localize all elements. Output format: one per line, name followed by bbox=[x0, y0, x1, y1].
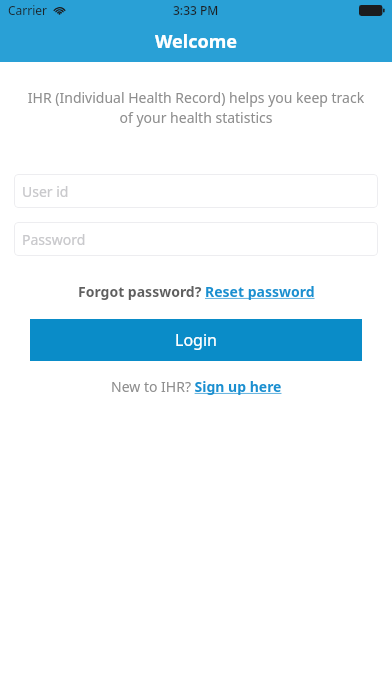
staticText: IHR (Individual Health Record) helps you… bbox=[26, 88, 366, 128]
button[interactable]: Login bbox=[30, 319, 362, 361]
button[interactable]: User id bbox=[14, 174, 378, 208]
button[interactable]: Password bbox=[14, 222, 378, 256]
staticText: New to IHR? Sign up here bbox=[111, 377, 282, 396]
button[interactable]: Forgot password? Reset password bbox=[74, 280, 319, 303]
staticText: Welcome bbox=[155, 29, 237, 54]
staticText: Carrier bbox=[8, 2, 48, 18]
staticText: User id bbox=[22, 182, 69, 201]
staticText: 3:33 PM bbox=[173, 2, 219, 18]
staticText: Password bbox=[22, 230, 86, 249]
button[interactable]: New to IHR? Sign up here bbox=[107, 375, 286, 398]
staticText: Login bbox=[175, 329, 217, 351]
staticText: Forgot password? Reset password bbox=[78, 282, 315, 301]
